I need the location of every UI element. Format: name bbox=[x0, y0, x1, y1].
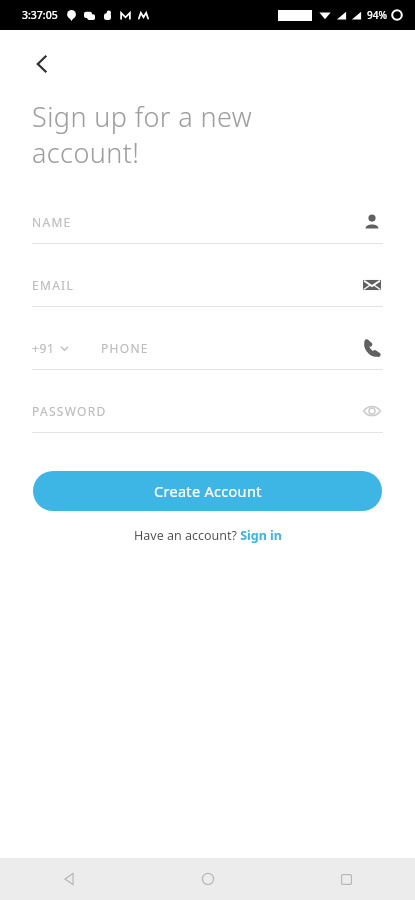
button[interactable]: Have an account? Sign in bbox=[126, 525, 290, 546]
other: Phone bbox=[361, 337, 383, 359]
button[interactable]: Back bbox=[20, 42, 64, 86]
staticText: +91 bbox=[32, 340, 55, 356]
staticText: Have an account? Sign in bbox=[134, 527, 282, 544]
staticText: 3:37:05 bbox=[22, 8, 58, 22]
other: Email bbox=[361, 274, 383, 296]
button[interactable]: Back bbox=[0, 858, 139, 900]
staticText: PHONE bbox=[101, 340, 361, 356]
staticText: 94% bbox=[367, 8, 387, 22]
button[interactable]: Recent apps bbox=[277, 858, 415, 900]
staticText: Sign up for a new account! bbox=[32, 98, 253, 171]
button[interactable]: Create Account bbox=[33, 471, 382, 511]
staticText: PASSWORD bbox=[32, 403, 361, 419]
staticText: NAME bbox=[32, 214, 361, 230]
other: Show password bbox=[361, 400, 383, 422]
button[interactable]: NAME bbox=[32, 201, 383, 243]
button[interactable]: EMAIL bbox=[32, 264, 383, 306]
staticText: Create Account bbox=[154, 481, 262, 501]
staticText: EMAIL bbox=[32, 277, 361, 293]
button[interactable]: +91 bbox=[32, 340, 75, 356]
other: Name bbox=[361, 211, 383, 233]
button[interactable]: Home bbox=[139, 858, 277, 900]
button[interactable]: PASSWORD bbox=[32, 390, 383, 432]
